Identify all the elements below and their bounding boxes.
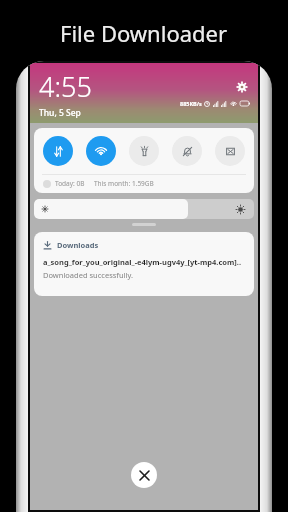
button[interactable]: Mobile data (43, 136, 73, 166)
staticText: a_song_for_you_original_-e4lym-ugv4y_[yt… (43, 257, 242, 267)
staticText: File Downloader (60, 18, 228, 48)
button[interactable]: Silent mode (172, 136, 202, 166)
button[interactable]: Wi-Fi (86, 136, 116, 166)
button[interactable]: Screenshot (215, 136, 245, 166)
staticText: 885KB/s (180, 100, 202, 107)
staticText: 4:55 (39, 68, 92, 105)
staticText: Today: 0B (55, 179, 85, 188)
staticText: Thu, 5 Sep (39, 107, 81, 119)
button[interactable]: Brightness slider (34, 199, 254, 219)
staticText: Downloaded successfully. (43, 270, 133, 280)
button[interactable]: Close notification shade (131, 462, 157, 488)
staticText: This month: 1.59GB (94, 179, 154, 188)
staticText: Downloads (57, 240, 99, 250)
button[interactable]: Flashlight (129, 136, 159, 166)
button[interactable]: Downloads (34, 232, 254, 296)
button[interactable]: Settings (234, 79, 250, 95)
